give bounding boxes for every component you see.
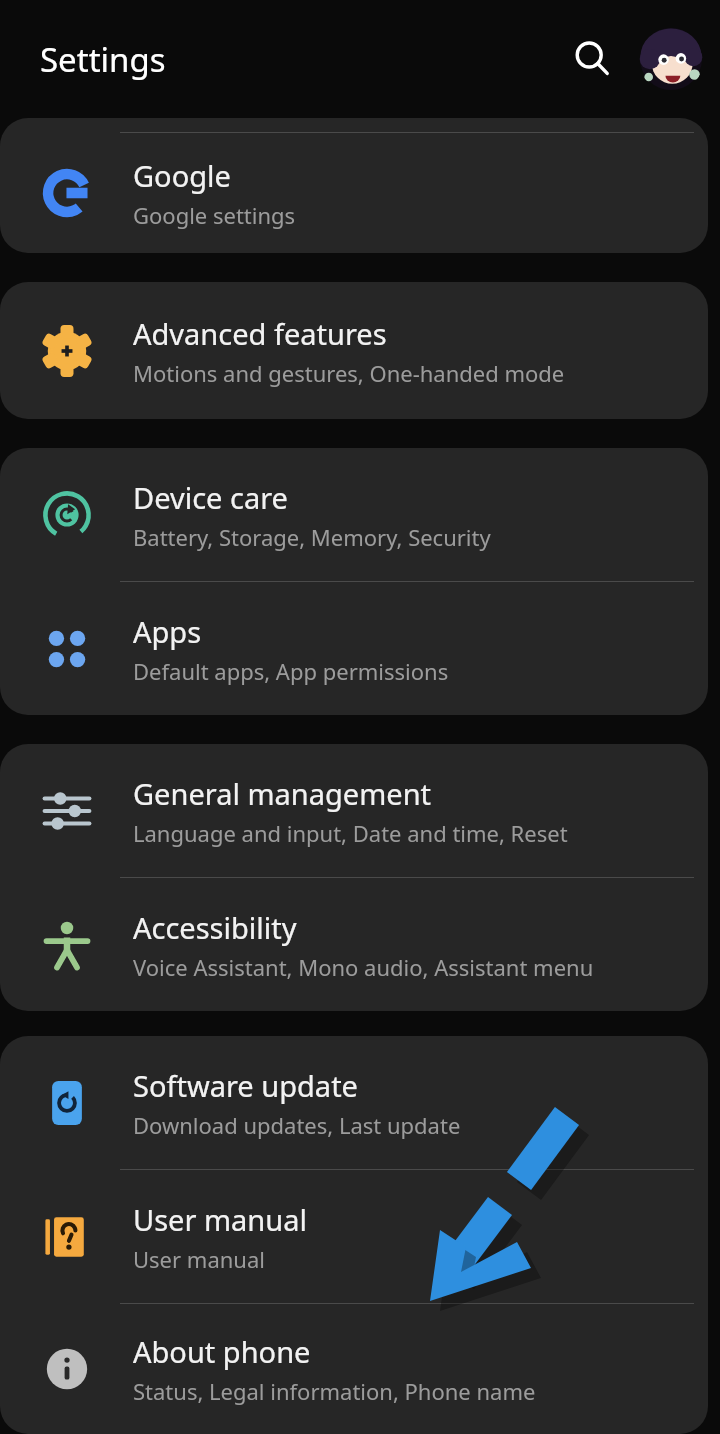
staticText: General management xyxy=(133,774,432,813)
button[interactable]: About phone xyxy=(0,1304,708,1434)
staticText: Device care xyxy=(133,478,288,517)
button[interactable]: User manual xyxy=(0,1170,708,1303)
staticText: Battery, Storage, Memory, Security xyxy=(133,522,491,552)
staticText: Accessibility xyxy=(133,908,297,947)
staticText: Status, Legal information, Phone name xyxy=(133,1376,536,1406)
staticText: User manual xyxy=(133,1200,307,1239)
staticText: Google settings xyxy=(133,200,296,230)
staticText: Apps xyxy=(133,612,202,651)
button[interactable]: General management xyxy=(0,744,708,877)
button[interactable]: Accessibility xyxy=(0,878,708,1011)
staticText: Download updates, Last update xyxy=(133,1110,461,1140)
button[interactable]: Account xyxy=(638,26,704,92)
button[interactable]: Apps xyxy=(0,582,708,715)
staticText: Google xyxy=(133,156,231,195)
staticText: Settings xyxy=(40,37,166,82)
button[interactable]: Device care xyxy=(0,448,708,581)
staticText: Motions and gestures, One-handed mode xyxy=(133,358,565,388)
staticText: Voice Assistant, Mono audio, Assistant m… xyxy=(133,952,594,982)
staticText: About phone xyxy=(133,1332,311,1371)
staticText: Advanced features xyxy=(133,314,387,353)
button[interactable]: Advanced features xyxy=(0,282,708,419)
staticText: Default apps, App permissions xyxy=(133,656,449,686)
staticText: Language and input, Date and time, Reset xyxy=(133,818,568,848)
button[interactable]: Google xyxy=(0,133,708,253)
button[interactable]: Software update xyxy=(0,1036,708,1169)
staticText: User manual xyxy=(133,1244,265,1274)
staticText: Software update xyxy=(133,1066,358,1105)
button[interactable]: Search xyxy=(556,23,628,95)
